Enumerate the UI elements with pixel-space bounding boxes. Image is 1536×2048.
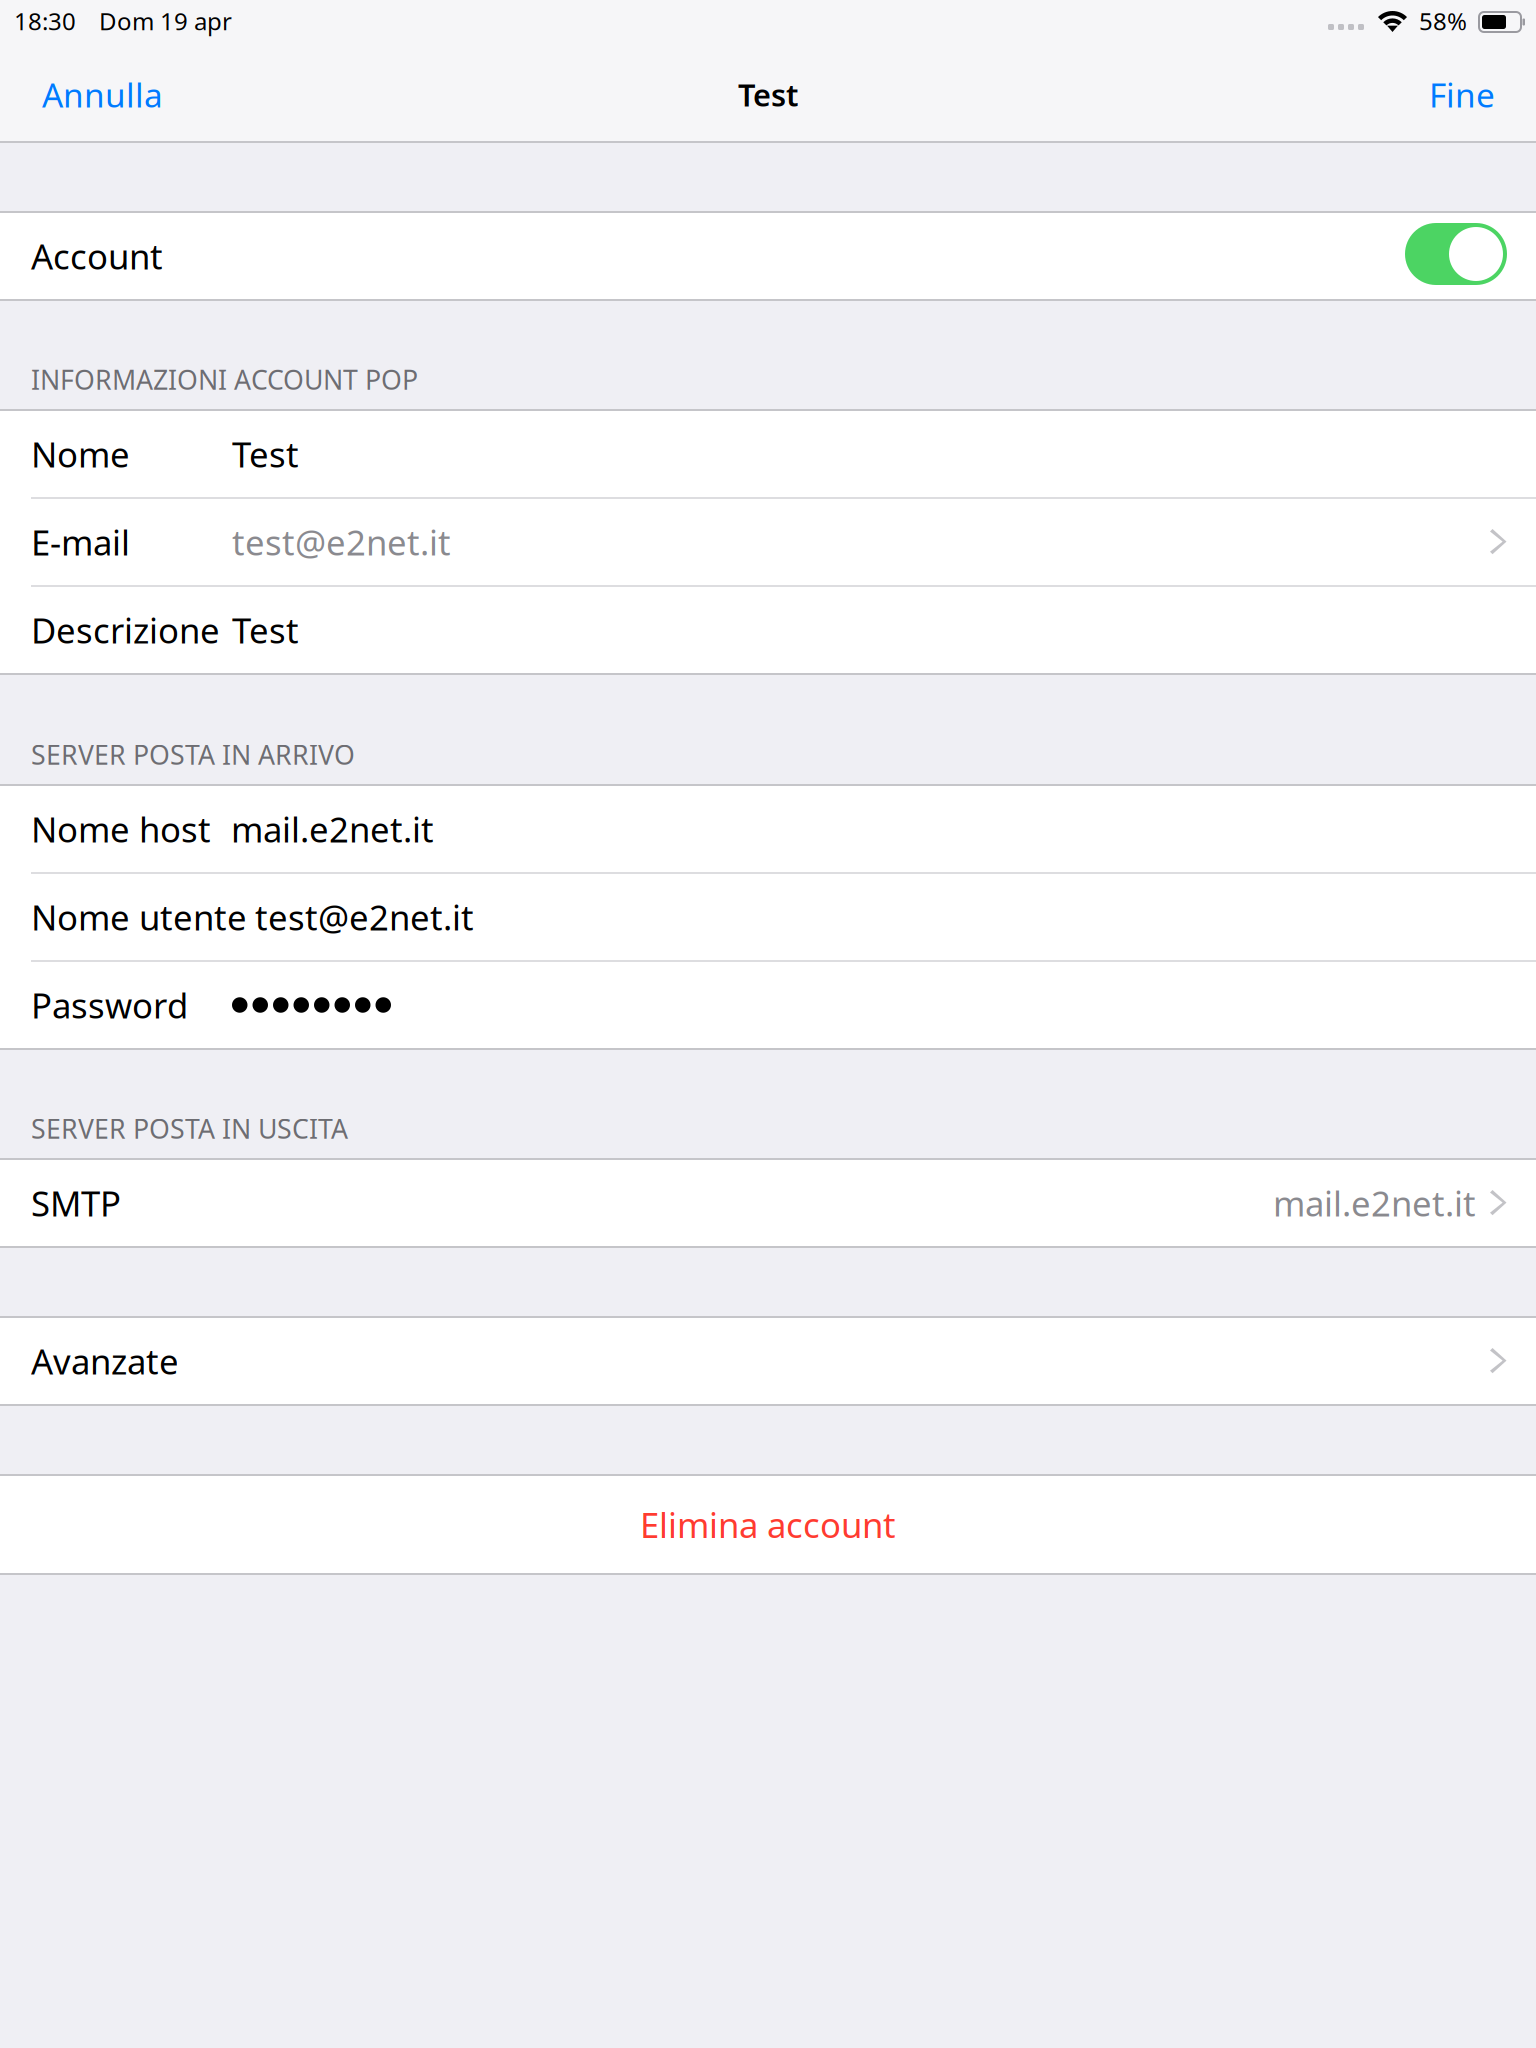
staticText: Avanzate xyxy=(31,1338,179,1384)
button[interactable]: Elimina account xyxy=(0,1476,1536,1575)
staticText: Dom 19 apr xyxy=(99,5,232,37)
staticText: 18:30 xyxy=(14,5,76,37)
staticText: Elimina account xyxy=(640,1501,896,1547)
staticText: INFORMAZIONI ACCOUNT POP xyxy=(31,362,418,397)
staticText: Test xyxy=(738,74,798,115)
staticText: E-mail xyxy=(31,519,130,565)
staticText: test@e2net.it xyxy=(232,519,451,565)
staticText: SERVER POSTA IN ARRIVO xyxy=(31,737,355,772)
staticText: mail.e2net.it xyxy=(1273,1180,1476,1226)
staticText: Account xyxy=(31,233,163,279)
button[interactable]: Annulla xyxy=(42,58,163,131)
staticText: Annulla xyxy=(42,72,163,117)
staticText: mail.e2net.it xyxy=(231,806,434,852)
button[interactable]: Avanzate xyxy=(0,1318,1536,1406)
staticText: SMTP xyxy=(31,1180,121,1226)
button[interactable]: Nome utente xyxy=(0,874,1536,962)
staticText: Nome xyxy=(31,431,130,477)
button[interactable]: Nome host xyxy=(0,786,1536,874)
staticText: Nome utente xyxy=(31,894,247,940)
staticText: 58% xyxy=(1419,5,1467,37)
button[interactable]: Descrizione xyxy=(0,587,1536,675)
button[interactable]: Nome xyxy=(0,411,1536,499)
button[interactable]: E-mail xyxy=(0,499,1536,587)
staticText: Fine xyxy=(1429,72,1495,117)
staticText: Test xyxy=(232,431,299,477)
button[interactable]: Account xyxy=(0,213,1536,301)
staticText: Password xyxy=(31,982,188,1028)
button[interactable]: SMTP xyxy=(0,1160,1536,1248)
staticText: Nome host xyxy=(31,806,211,852)
staticText: Descrizione xyxy=(31,607,220,653)
staticText: SERVER POSTA IN USCITA xyxy=(31,1111,348,1146)
button[interactable]: Password xyxy=(0,962,1536,1050)
staticText: test@e2net.it xyxy=(255,894,474,940)
button[interactable]: Fine xyxy=(1429,58,1495,131)
staticText: Test xyxy=(232,607,299,653)
